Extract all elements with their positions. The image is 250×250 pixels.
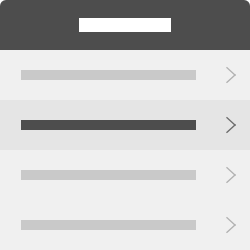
button[interactable]: List item 1 xyxy=(0,50,250,100)
button[interactable]: List item 3 xyxy=(0,150,250,200)
button[interactable]: List item 4 xyxy=(0,200,250,250)
button[interactable]: List item 2, selected xyxy=(0,100,250,150)
